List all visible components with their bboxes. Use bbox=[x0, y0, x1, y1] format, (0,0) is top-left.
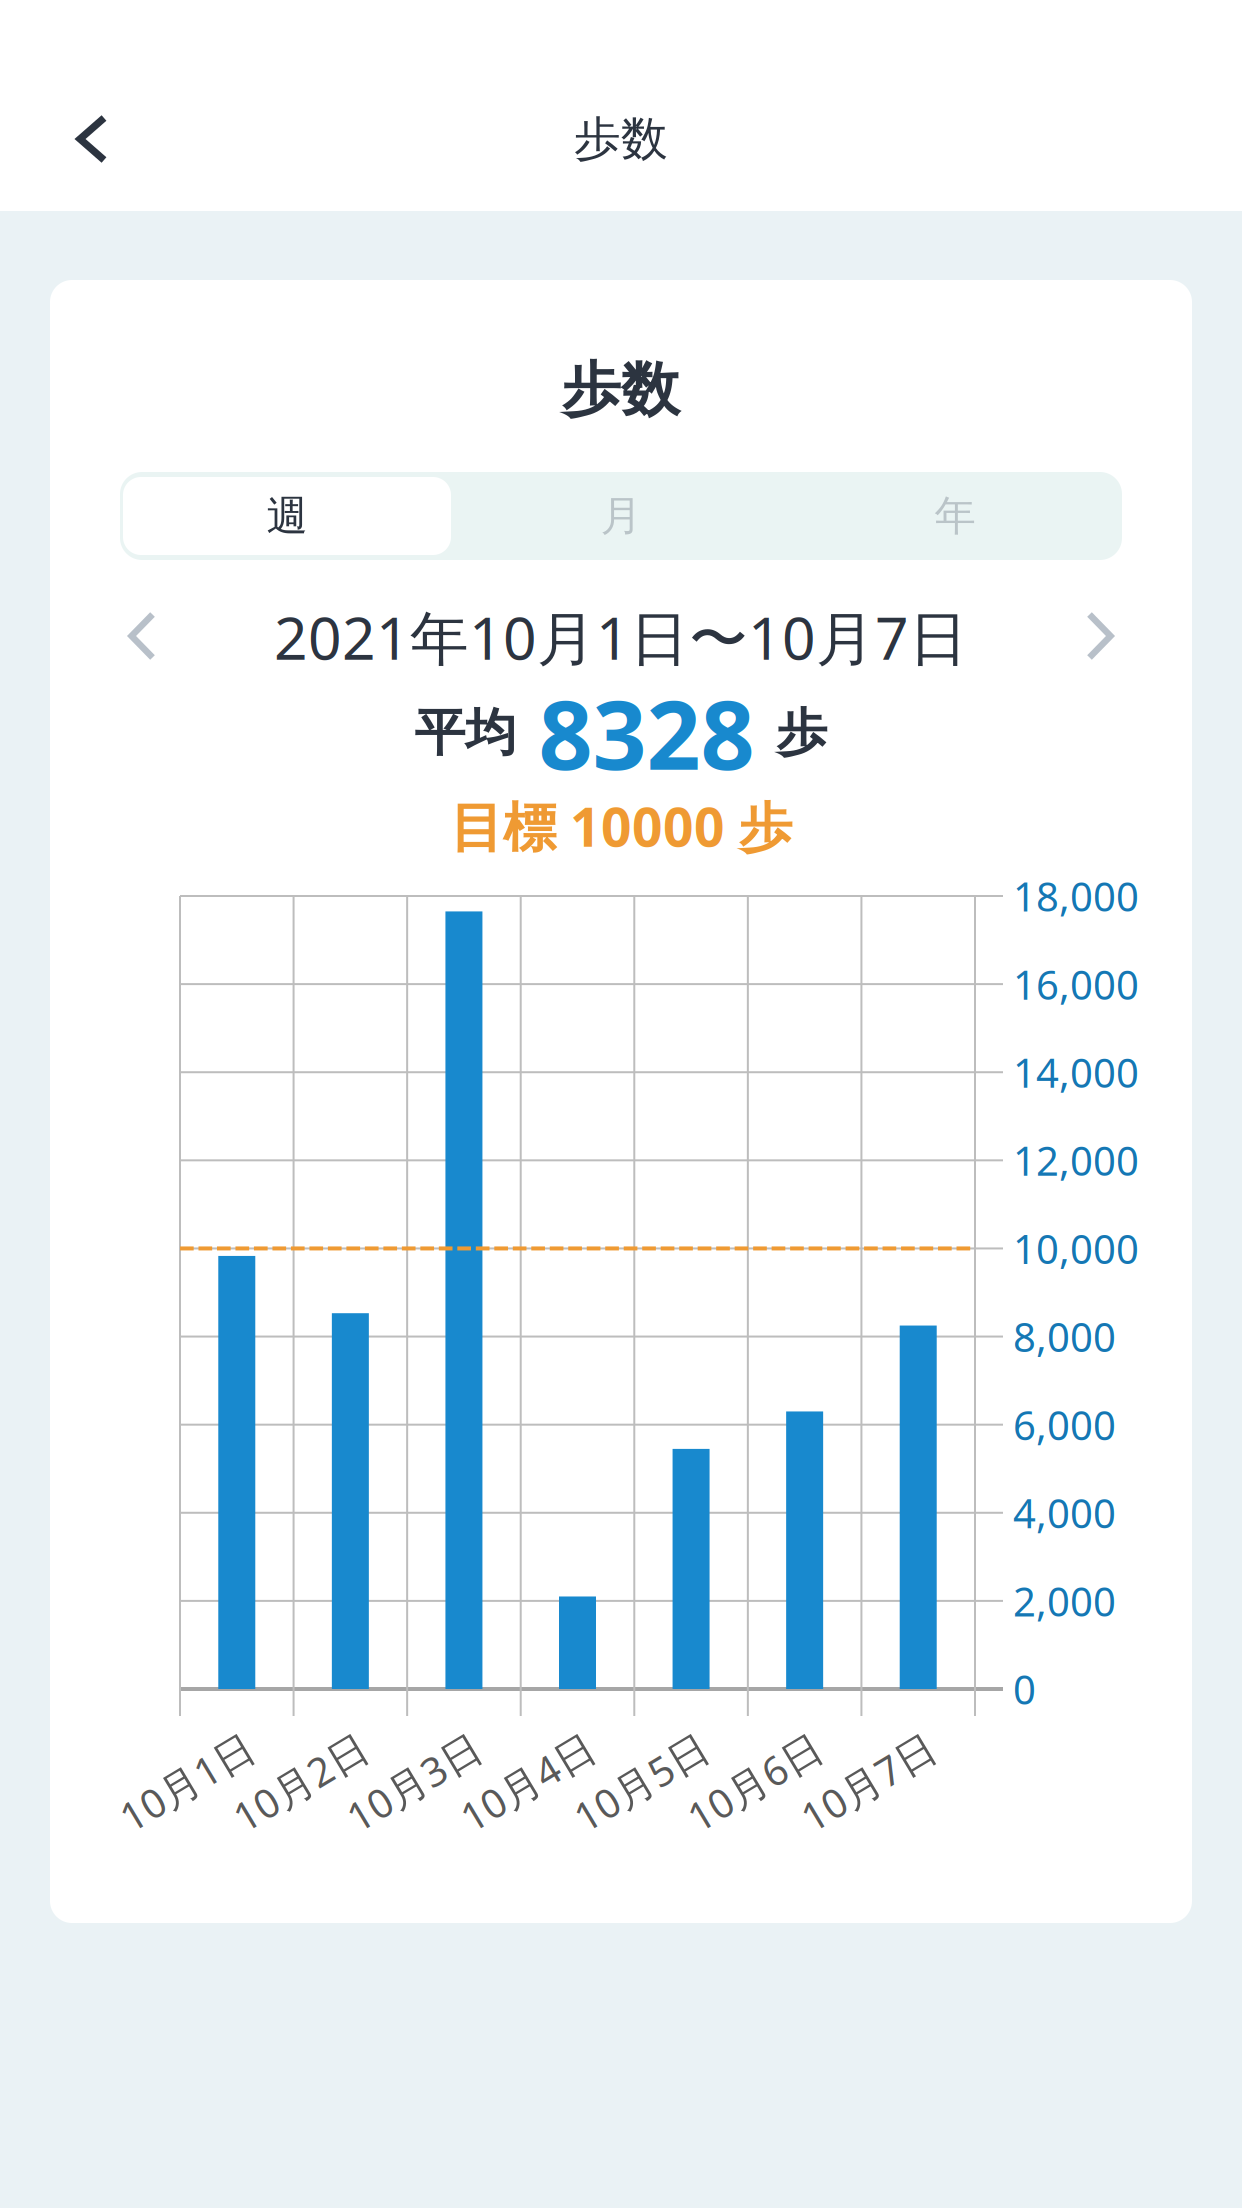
button[interactable]: 月 bbox=[454, 472, 788, 560]
staticText: 14,000 bbox=[1013, 1046, 1139, 1099]
staticText: 10月6日 bbox=[680, 1755, 829, 1808]
staticText: 10,000 bbox=[1013, 1222, 1139, 1275]
staticText: 16,000 bbox=[1013, 958, 1139, 1011]
staticText: 歩 bbox=[776, 702, 827, 764]
staticText: 2021年10月1日〜10月7日 bbox=[274, 598, 968, 676]
staticText: 年 bbox=[934, 491, 975, 541]
staticText: 10月4日 bbox=[453, 1755, 602, 1808]
staticText: 6,000 bbox=[1013, 1398, 1116, 1451]
staticText: 10月5日 bbox=[567, 1755, 716, 1808]
staticText: 10月3日 bbox=[339, 1755, 488, 1808]
button[interactable]: 週 bbox=[120, 472, 454, 560]
staticText: 12,000 bbox=[1013, 1134, 1139, 1187]
staticText: 10月1日 bbox=[112, 1755, 261, 1808]
staticText: 週 bbox=[266, 491, 307, 541]
staticText: 歩数 bbox=[574, 110, 668, 168]
staticText: 平均 bbox=[414, 702, 516, 764]
staticText: 月 bbox=[600, 491, 641, 541]
staticText: 10月2日 bbox=[226, 1755, 375, 1808]
staticText: 18,000 bbox=[1013, 869, 1139, 922]
button[interactable]: 年 bbox=[788, 472, 1122, 560]
staticText: 8,000 bbox=[1013, 1310, 1116, 1363]
button[interactable]: Previous week bbox=[92, 594, 192, 678]
staticText: 目標 10000 歩 bbox=[450, 791, 792, 861]
staticText: 2,000 bbox=[1013, 1574, 1116, 1627]
staticText: 10月7日 bbox=[794, 1755, 943, 1808]
button[interactable]: Next week bbox=[1050, 594, 1150, 678]
staticText: 8328 bbox=[538, 670, 754, 796]
button[interactable]: Back bbox=[27, 69, 157, 209]
staticText: 4,000 bbox=[1013, 1486, 1116, 1539]
staticText: 歩数 bbox=[562, 354, 680, 426]
staticText: 0 bbox=[1013, 1662, 1036, 1715]
